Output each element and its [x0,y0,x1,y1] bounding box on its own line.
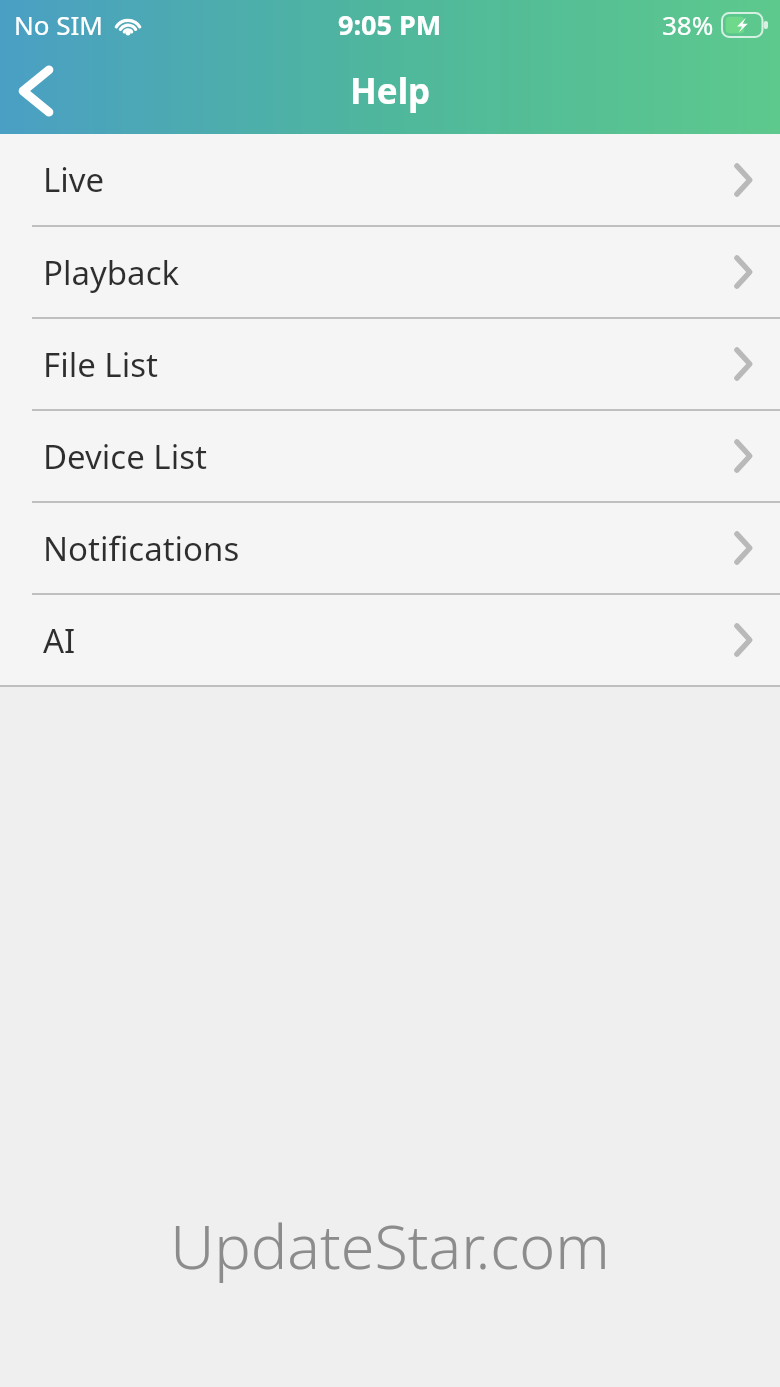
button[interactable]: File List [0,319,780,409]
button[interactable]: Back [0,48,72,134]
button[interactable]: Device List [0,411,780,501]
button[interactable]: Notifications [0,503,780,593]
button[interactable]: Playback [0,227,780,317]
staticText: UpdateStar.com [0,1204,780,1287]
staticText: Device List [43,434,734,479]
staticText: File List [43,342,734,387]
staticText: AI [43,618,734,663]
staticText: 9:05 PM [338,6,442,43]
staticText: 38% [662,7,714,42]
staticText: Notifications [43,526,734,571]
button[interactable]: AI [0,595,780,685]
staticText: No SIM [14,7,103,42]
staticText: Help [350,67,431,115]
staticText: Live [43,157,734,202]
button[interactable]: Live [0,134,780,225]
staticText: Playback [43,250,734,295]
